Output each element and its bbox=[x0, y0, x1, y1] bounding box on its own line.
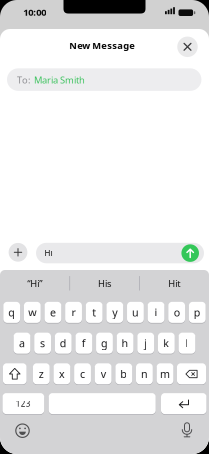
staticText: e bbox=[50, 305, 56, 319]
staticText: m bbox=[160, 367, 170, 381]
staticText: h bbox=[122, 336, 129, 350]
staticText: k bbox=[163, 336, 169, 350]
staticText: 10:00 bbox=[23, 6, 46, 18]
staticText: f bbox=[82, 336, 86, 350]
staticText: d bbox=[60, 336, 67, 350]
staticText: To: bbox=[17, 74, 31, 86]
staticText: z bbox=[39, 367, 44, 381]
staticText: g bbox=[101, 336, 108, 350]
staticText: q bbox=[8, 305, 15, 319]
staticText: x bbox=[59, 367, 65, 381]
staticText: n bbox=[141, 367, 148, 381]
staticText: c bbox=[80, 367, 85, 381]
staticText: p bbox=[194, 305, 201, 319]
staticText: a bbox=[19, 336, 25, 350]
staticText: l bbox=[185, 336, 188, 350]
staticText: j bbox=[144, 336, 147, 350]
staticText: Maria Smith bbox=[34, 74, 85, 86]
staticText: i bbox=[154, 305, 157, 319]
staticText: v bbox=[101, 367, 106, 381]
staticText: 123 bbox=[16, 398, 31, 409]
staticText: His bbox=[98, 277, 111, 289]
staticText: r bbox=[72, 305, 76, 319]
staticText: “Hi” bbox=[27, 277, 42, 289]
staticText: b bbox=[120, 367, 127, 381]
staticText: Hit bbox=[168, 277, 180, 289]
staticText: Hi bbox=[44, 248, 52, 258]
staticText: s bbox=[40, 336, 45, 350]
staticText: w bbox=[28, 305, 36, 319]
staticText: o bbox=[174, 305, 180, 319]
staticText: t bbox=[92, 305, 96, 319]
staticText: New Message bbox=[69, 39, 135, 51]
staticText: y bbox=[112, 305, 117, 319]
staticText: u bbox=[132, 305, 139, 319]
